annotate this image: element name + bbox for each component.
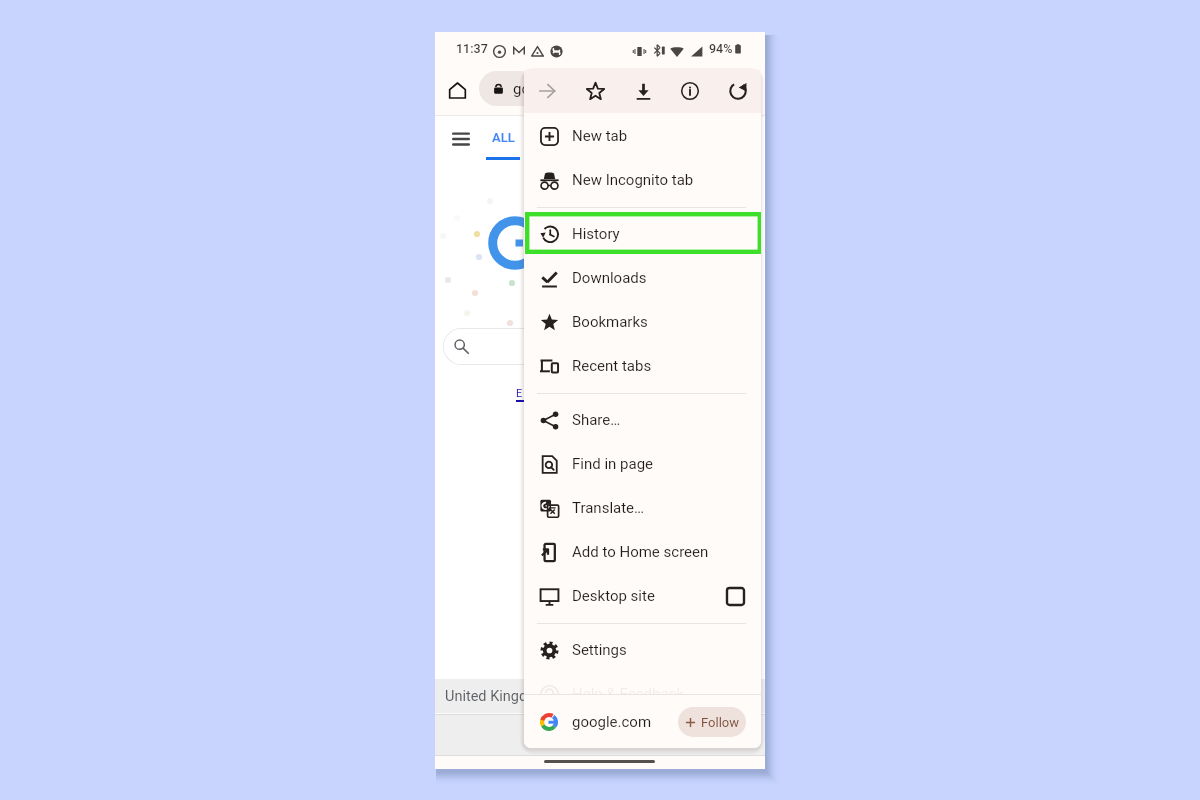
button[interactable]: Page info <box>676 77 704 105</box>
button[interactable]: Share… <box>524 398 761 442</box>
staticText: Add to Home screen <box>572 543 709 561</box>
staticText: New tab <box>572 127 628 145</box>
staticText: ALL <box>492 130 515 145</box>
button[interactable]: Settings <box>524 628 761 672</box>
button[interactable]: Reload <box>724 77 752 105</box>
staticText: E <box>516 387 523 400</box>
staticText: 94% <box>709 41 733 56</box>
button[interactable]: Desktop site <box>524 574 761 618</box>
button[interactable]: Menu <box>447 124 475 152</box>
button[interactable]: Bookmarks <box>524 300 761 344</box>
button[interactable]: Find in page <box>524 442 761 486</box>
button[interactable]: ALL <box>483 120 524 154</box>
staticText: New Incognito tab <box>572 171 694 189</box>
button[interactable]: Translate… <box>524 486 761 530</box>
button[interactable]: Forward <box>533 77 561 105</box>
button[interactable]: New Incognito tab <box>524 158 761 202</box>
button[interactable]: google.com <box>524 695 761 748</box>
staticText: Recent tabs <box>572 357 652 375</box>
staticText: History <box>572 225 620 243</box>
staticText: Share… <box>572 411 621 429</box>
staticText: google.com <box>513 80 593 98</box>
staticText: Help & Feedback <box>572 685 685 703</box>
button[interactable]: Help & Feedback <box>524 672 761 716</box>
button[interactable]: Download <box>629 77 657 105</box>
staticText: Downloads <box>572 269 647 287</box>
button[interactable]: Add to Home screen <box>524 530 761 574</box>
staticText: google.com <box>572 713 652 731</box>
button[interactable]: History <box>524 212 761 256</box>
staticText: Find in page <box>572 455 654 473</box>
button[interactable] <box>443 328 703 365</box>
button[interactable]: Downloads <box>524 256 761 300</box>
staticText: 11:37 <box>456 41 488 56</box>
staticText: Bookmarks <box>572 313 648 331</box>
staticText: Settings <box>572 641 627 659</box>
button[interactable]: Bookmark <box>581 77 609 105</box>
button[interactable]: Follow <box>678 707 746 737</box>
button[interactable]: google.com <box>479 71 719 106</box>
button[interactable]: Recent tabs <box>524 344 761 388</box>
staticText: Translate… <box>572 499 645 517</box>
staticText: Desktop site <box>572 587 655 605</box>
staticText: United Kingdom <box>445 688 549 705</box>
staticText: Follow <box>701 715 739 730</box>
button[interactable]: New tab <box>524 114 761 158</box>
button[interactable]: Home <box>443 76 471 104</box>
